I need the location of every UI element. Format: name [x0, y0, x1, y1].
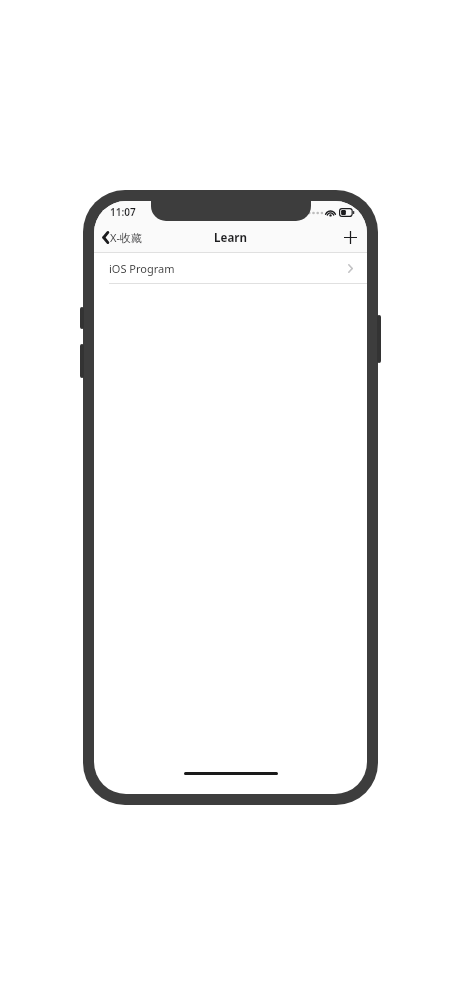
- button[interactable]: Add: [334, 225, 367, 250]
- staticText: 11:07: [110, 205, 136, 219]
- staticText: X-收藏: [110, 230, 142, 245]
- button[interactable]: iOS Program: [94, 253, 367, 283]
- staticText: Learn: [214, 230, 247, 246]
- staticText: iOS Program: [109, 261, 175, 276]
- button[interactable]: X-收藏: [94, 226, 150, 249]
